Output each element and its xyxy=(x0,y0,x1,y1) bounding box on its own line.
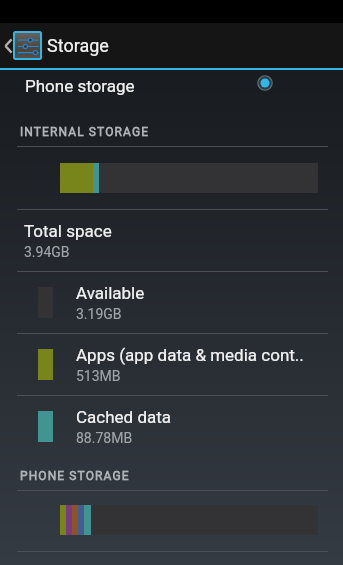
button[interactable]: Total space xyxy=(0,209,343,271)
staticText: INTERNAL STORAGE xyxy=(20,125,150,139)
staticText: 88.78MB xyxy=(76,430,133,446)
staticText: Cached data xyxy=(76,407,172,427)
button[interactable]: Phone storage xyxy=(0,66,343,106)
staticText: 513MB xyxy=(76,368,121,384)
staticText: Phone storage xyxy=(25,76,135,96)
button[interactable]: Apps (app data & media cont.. xyxy=(0,333,343,395)
staticText: PHONE STORAGE xyxy=(20,469,130,483)
staticText: Apps (app data & media cont.. xyxy=(76,345,304,365)
button[interactable]: Navigate up to Settings xyxy=(0,23,119,68)
staticText: Available xyxy=(76,283,145,303)
staticText: 3.19GB xyxy=(76,306,122,322)
button[interactable]: Cached data xyxy=(0,395,343,457)
button[interactable]: Available xyxy=(0,271,343,333)
staticText: Storage xyxy=(47,35,109,56)
staticText: Total space xyxy=(24,221,112,241)
staticText: 3.94GB xyxy=(24,244,70,260)
